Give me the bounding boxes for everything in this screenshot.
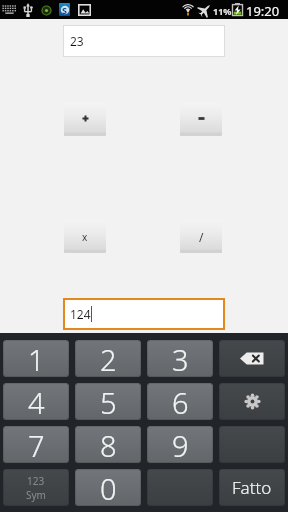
button[interactable]: [219, 426, 285, 463]
staticText: /: [199, 229, 204, 245]
button[interactable]: 23: [63, 25, 225, 57]
button[interactable]: 1: [3, 340, 69, 377]
button[interactable]: times: [64, 219, 106, 252]
button[interactable]: Delete: [219, 340, 285, 377]
button[interactable]: 3: [147, 340, 213, 377]
staticText: 1: [28, 340, 45, 377]
staticText: 8: [100, 426, 117, 463]
button[interactable]: 124: [63, 298, 225, 330]
button[interactable]: 0: [75, 469, 141, 506]
staticText: 7: [28, 426, 45, 463]
button[interactable]: 9: [147, 426, 213, 463]
staticText: 2: [100, 340, 117, 377]
staticText: 4: [28, 383, 45, 420]
button[interactable]: 5: [75, 383, 141, 420]
button[interactable]: Fatto: [219, 469, 285, 506]
staticText: 11%: [213, 5, 232, 17]
button[interactable]: divide: [180, 219, 222, 252]
staticText: 23: [70, 33, 84, 49]
button[interactable]: Settings: [219, 383, 285, 420]
button[interactable]: 8: [75, 426, 141, 463]
staticText: 19:20: [246, 2, 280, 20]
button[interactable]: [147, 469, 213, 506]
staticText: Fatto: [232, 476, 272, 499]
button[interactable]: 123: [3, 469, 69, 506]
staticText: 124: [70, 306, 91, 322]
staticText: 123: [27, 474, 45, 488]
staticText: 0: [100, 469, 117, 506]
button[interactable]: 7: [3, 426, 69, 463]
button[interactable]: plus: [64, 102, 106, 135]
button[interactable]: minus: [180, 102, 222, 135]
staticText: 5: [100, 383, 117, 420]
staticText: Sym: [26, 488, 46, 502]
button[interactable]: 4: [3, 383, 69, 420]
button[interactable]: 2: [75, 340, 141, 377]
staticText: 6: [172, 383, 189, 420]
staticText: S: [62, 4, 67, 16]
staticText: 9: [172, 426, 189, 463]
staticText: x: [82, 230, 88, 244]
button[interactable]: 6: [147, 383, 213, 420]
staticText: 3: [172, 340, 189, 377]
